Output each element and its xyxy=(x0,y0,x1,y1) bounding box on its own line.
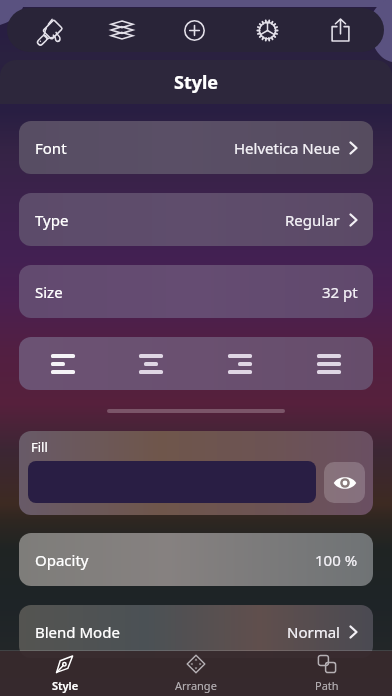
button[interactable]: Paint xyxy=(14,8,86,52)
button[interactable]: Opacity xyxy=(19,533,373,586)
staticText: Arrange xyxy=(175,678,217,693)
staticText: Opacity xyxy=(35,550,89,570)
button[interactable]: Layers xyxy=(86,8,158,52)
staticText: Blend Mode xyxy=(35,622,120,642)
staticText: Normal xyxy=(287,622,340,642)
button[interactable]: Align right xyxy=(195,337,284,390)
staticText: Regular xyxy=(285,210,340,230)
staticText: Fill xyxy=(31,438,48,456)
button[interactable]: Add xyxy=(158,8,231,52)
staticText: Style xyxy=(52,678,79,693)
button[interactable]: Font xyxy=(19,121,373,174)
staticText: Style xyxy=(174,70,219,95)
button[interactable]: Blend Mode xyxy=(19,605,373,658)
button[interactable]: Settings xyxy=(231,8,304,52)
button[interactable]: Path xyxy=(261,651,392,696)
button[interactable]: Share xyxy=(304,8,377,52)
button[interactable]: Fill colour xyxy=(28,461,316,503)
staticText: Font xyxy=(35,138,67,158)
button[interactable]: Arrange xyxy=(130,651,261,696)
button[interactable]: Justify xyxy=(284,337,373,390)
button[interactable]: Align center xyxy=(107,337,195,390)
button[interactable]: Type xyxy=(19,193,373,246)
staticText: Path xyxy=(315,678,339,693)
button[interactable]: Toggle visibility xyxy=(324,462,365,503)
button[interactable]: Size xyxy=(19,265,373,318)
staticText: Size xyxy=(35,282,63,302)
staticText: Helvetica Neue xyxy=(234,138,340,158)
staticText: 100 % xyxy=(315,550,358,570)
staticText: Type xyxy=(35,210,69,230)
button[interactable]: Align left xyxy=(19,337,107,390)
staticText: 32 pt xyxy=(322,282,358,302)
button[interactable]: Style xyxy=(0,651,130,696)
